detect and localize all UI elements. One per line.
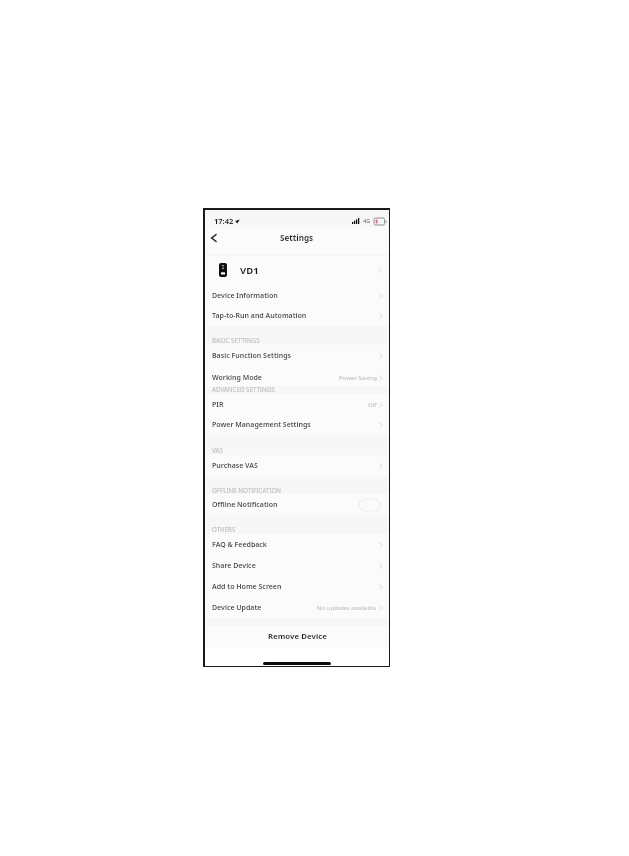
staticText: PIR bbox=[212, 400, 224, 410]
button[interactable]: Remove Device bbox=[205, 626, 389, 647]
button[interactable]: Device Information bbox=[205, 285, 389, 306]
button[interactable]: VD1 bbox=[205, 256, 389, 284]
staticText: BASIC SETTINGS bbox=[212, 336, 260, 344]
staticText: Remove Device bbox=[268, 631, 327, 642]
staticText: Power Management Settings bbox=[212, 420, 311, 430]
staticText: ADVANCED SETTINGS bbox=[212, 385, 275, 393]
button[interactable]: Offline Notification bbox=[205, 494, 389, 515]
staticText: Tap-to-Run and Automation bbox=[212, 311, 307, 321]
staticText: Device Information bbox=[212, 291, 278, 301]
staticText: FAQ & Feedback bbox=[212, 540, 267, 550]
staticText: Working Mode bbox=[212, 373, 262, 383]
staticText: VAS bbox=[212, 446, 223, 454]
staticText: VD1 bbox=[240, 264, 259, 277]
staticText: 4G bbox=[363, 217, 371, 225]
staticText: Basic Function Settings bbox=[212, 351, 292, 361]
button[interactable]: PIR bbox=[205, 394, 389, 415]
button[interactable]: FAQ & Feedback bbox=[205, 534, 389, 555]
button[interactable]: Power Management Settings bbox=[205, 414, 389, 435]
staticText: Add to Home Screen bbox=[212, 582, 282, 592]
staticText: Offline Notification bbox=[212, 500, 278, 510]
button[interactable]: Device Update bbox=[205, 597, 389, 618]
button[interactable]: Tap-to-Run and Automation bbox=[205, 305, 389, 326]
staticText: Settings bbox=[280, 232, 314, 243]
button[interactable]: Purchase VAS bbox=[205, 455, 389, 476]
button[interactable]: Back bbox=[206, 229, 222, 247]
staticText: OTHERS bbox=[212, 525, 236, 533]
staticText: Device Update bbox=[212, 603, 262, 613]
staticText: Off bbox=[368, 401, 377, 409]
button[interactable]: Basic Function Settings bbox=[205, 345, 389, 366]
staticText: OFFLINE NOTIFICATION bbox=[212, 486, 282, 494]
button[interactable]: Add to Home Screen bbox=[205, 576, 389, 597]
button[interactable]: Working Mode bbox=[205, 367, 389, 388]
staticText: Share Device bbox=[212, 561, 256, 571]
staticText: Purchase VAS bbox=[212, 461, 258, 471]
button[interactable]: Share Device bbox=[205, 555, 389, 576]
staticText: No updates available bbox=[317, 604, 377, 612]
staticText: Power Saving bbox=[339, 374, 377, 382]
staticText: 17:42 bbox=[214, 216, 234, 226]
